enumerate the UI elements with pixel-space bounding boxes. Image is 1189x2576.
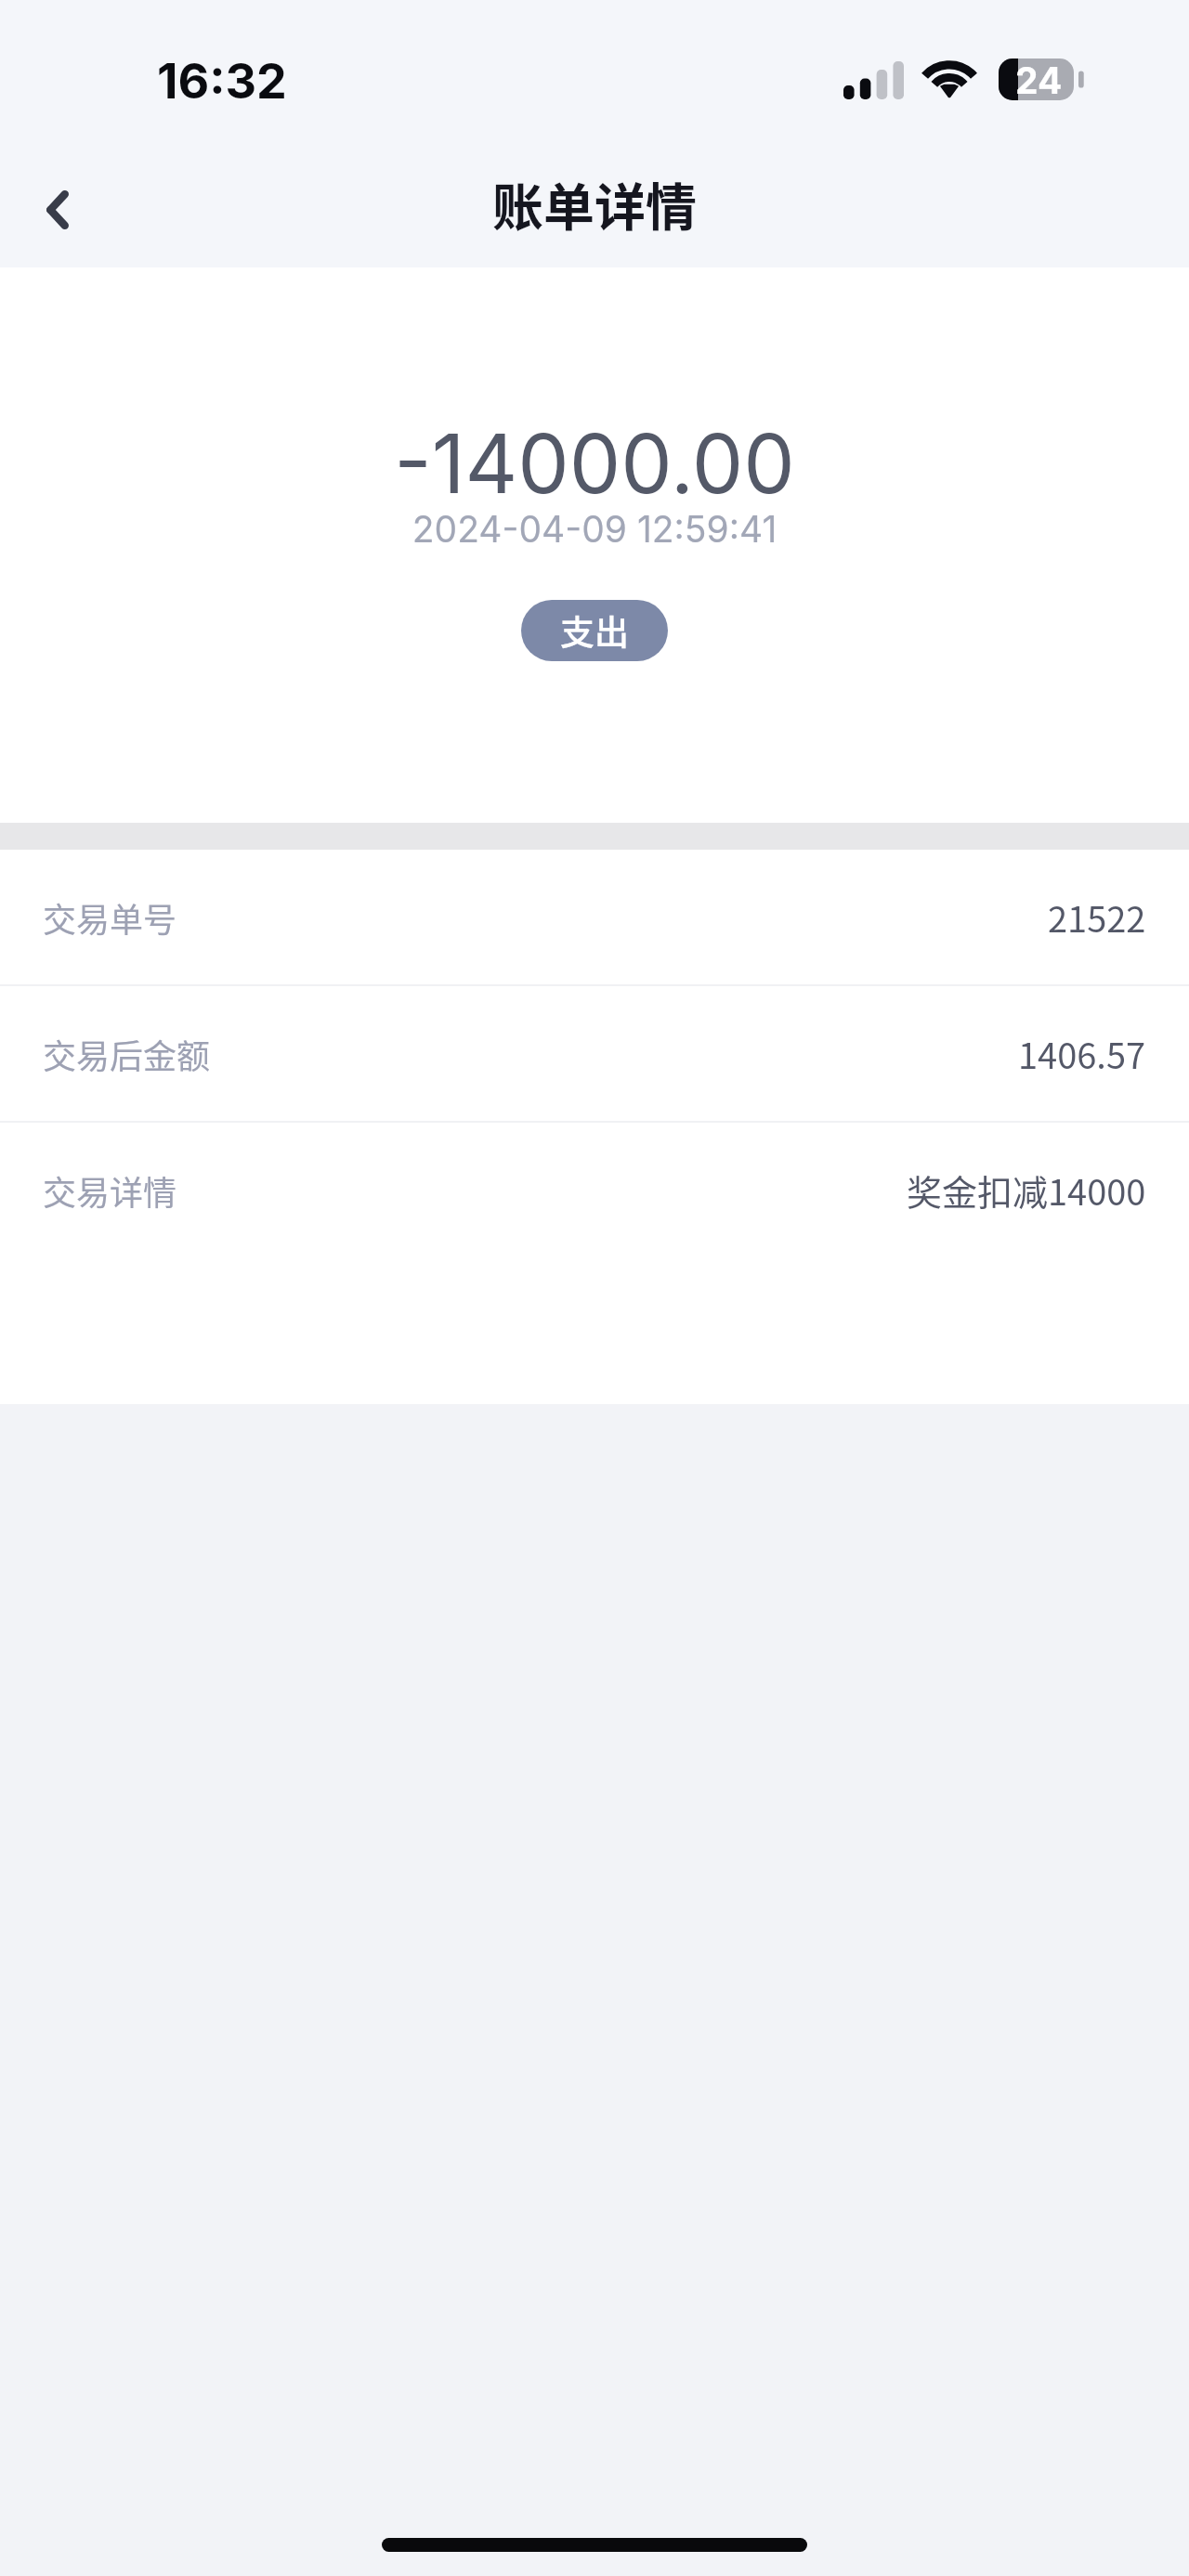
staticText: 奖金扣减14000	[907, 1164, 1146, 1216]
staticText: 账单详情	[492, 166, 698, 241]
staticText: 交易后金额	[43, 1030, 211, 1078]
button[interactable]: 交易后金额	[0, 986, 1189, 1121]
staticText: -14000.00	[0, 414, 1189, 513]
staticText: 交易详情	[43, 1166, 177, 1215]
staticText: 21522	[1048, 891, 1146, 943]
staticText: 2024-04-09 12:59:41	[0, 507, 1189, 551]
staticText: 16:32	[157, 52, 287, 111]
button[interactable]: Back	[7, 159, 109, 261]
button[interactable]: 支出	[521, 600, 668, 661]
button[interactable]: 交易详情	[0, 1123, 1189, 1257]
button[interactable]: 交易单号	[0, 850, 1189, 984]
staticText: 支出	[560, 605, 629, 656]
other: Wi-Fi	[922, 59, 976, 98]
staticText: 1406.57	[1018, 1028, 1146, 1079]
other: Battery 24 percent	[999, 59, 1084, 100]
staticText: 24	[1015, 59, 1063, 100]
staticText: 交易单号	[43, 893, 177, 942]
other: Cellular signal	[843, 61, 904, 99]
